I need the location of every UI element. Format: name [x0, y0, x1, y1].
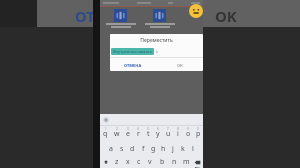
button[interactable]: c: [133, 156, 144, 168]
staticText: 5: [147, 127, 149, 131]
button[interactable]: s: [116, 141, 127, 156]
staticText: 8: [177, 127, 179, 131]
staticText: r: [137, 129, 140, 139]
button[interactable]: h: [158, 141, 168, 156]
button[interactable]: b: [156, 156, 168, 168]
button[interactable]: a: [105, 141, 116, 156]
staticText: 4: [137, 127, 139, 131]
staticText: s: [120, 144, 124, 154]
staticText: 3: [127, 127, 129, 131]
staticText: Переместить: [140, 37, 173, 44]
staticText: ОК: [177, 63, 183, 68]
button[interactable]: OK: [215, 6, 237, 26]
staticText: q: [103, 129, 108, 139]
staticText: ОТМЕНА: [124, 63, 142, 68]
button[interactable]: 9: [183, 126, 193, 141]
staticText: u: [166, 129, 171, 139]
button[interactable]: 4: [133, 126, 143, 141]
button[interactable]: Shift: [100, 156, 111, 168]
button[interactable]: ОК: [156, 60, 203, 71]
staticText: 7: [167, 127, 169, 131]
button[interactable]: 1: [100, 126, 111, 141]
staticText: b: [160, 157, 165, 167]
staticText: OK: [215, 6, 237, 26]
staticText: a: [109, 144, 113, 154]
staticText: m: [183, 157, 190, 167]
button[interactable]: ОТМЕНА: [110, 60, 156, 71]
staticText: l: [192, 144, 194, 154]
staticText: j: [172, 144, 174, 154]
staticText: v: [148, 157, 152, 167]
button[interactable]: 8: [173, 126, 183, 141]
staticText: c: [137, 157, 141, 167]
button[interactable]: ОТ: [75, 6, 96, 26]
staticText: p: [196, 129, 201, 139]
staticText: i: [177, 129, 179, 139]
staticText: h: [161, 144, 166, 154]
staticText: w: [114, 129, 120, 139]
button[interactable]: k: [178, 141, 188, 156]
staticText: 0: [197, 127, 199, 131]
other: Emoji reaction: [189, 4, 203, 18]
button[interactable]: g: [148, 141, 158, 156]
button[interactable]: Внутренняя память: [111, 48, 159, 55]
button[interactable]: Voice input: [103, 117, 109, 123]
staticText: Внутренняя память: [113, 49, 152, 54]
staticText: ОТ: [75, 6, 96, 26]
staticText: z: [115, 157, 119, 167]
staticText: n: [172, 157, 177, 167]
button[interactable]: m: [180, 156, 192, 168]
staticText: 9: [187, 127, 189, 131]
button[interactable]: Backspace: [192, 156, 203, 168]
staticText: g: [151, 144, 156, 154]
staticText: 2: [116, 127, 118, 131]
button[interactable]: 3: [122, 126, 133, 141]
button[interactable]: f: [138, 141, 148, 156]
button[interactable]: 0: [193, 126, 203, 141]
button[interactable]: [104, 7, 137, 28]
staticText: o: [186, 129, 191, 139]
button[interactable]: 5: [143, 126, 153, 141]
button[interactable]: 6: [153, 126, 163, 141]
staticText: 6: [157, 127, 159, 131]
button[interactable]: j: [168, 141, 178, 156]
button[interactable]: 7: [163, 126, 173, 141]
staticText: y: [156, 129, 160, 139]
staticText: e: [126, 129, 130, 139]
staticText: t: [147, 129, 150, 139]
staticText: k: [181, 144, 185, 154]
button[interactable]: v: [144, 156, 156, 168]
button[interactable]: n: [168, 156, 180, 168]
staticText: x: [126, 157, 130, 167]
button[interactable]: d: [127, 141, 138, 156]
button[interactable]: 2: [111, 126, 122, 141]
button[interactable]: l: [188, 141, 198, 156]
button[interactable]: x: [122, 156, 133, 168]
button[interactable]: z: [111, 156, 122, 168]
staticText: d: [130, 144, 135, 154]
staticText: f: [142, 144, 145, 154]
button[interactable]: [143, 7, 176, 28]
staticText: 1: [105, 127, 107, 131]
